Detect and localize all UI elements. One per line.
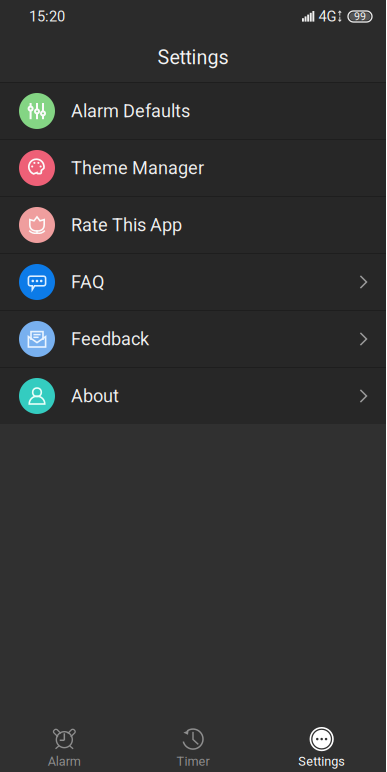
button[interactable]: Theme Manager <box>0 140 386 196</box>
staticText: 15:20 <box>29 8 65 25</box>
staticText: FAQ <box>71 271 104 293</box>
staticText: Rate This App <box>71 214 182 236</box>
button[interactable]: About <box>0 368 386 424</box>
staticText: Settings <box>157 46 228 69</box>
staticText: Feedback <box>71 328 149 350</box>
staticText: Settings <box>298 754 345 769</box>
staticText: 99 <box>354 10 366 23</box>
staticText: Alarm Defaults <box>71 100 190 122</box>
button[interactable]: Feedback <box>0 311 386 367</box>
button[interactable]: Rate This App <box>0 197 386 253</box>
button[interactable]: Timer <box>129 726 257 769</box>
button[interactable]: FAQ <box>0 254 386 310</box>
staticText: 4G <box>318 8 336 25</box>
staticText: Timer <box>176 754 209 769</box>
button[interactable]: Alarm Defaults <box>0 83 386 139</box>
staticText: Theme Manager <box>71 157 204 179</box>
button[interactable]: Alarm <box>0 726 129 769</box>
staticText: About <box>71 385 119 407</box>
staticText: Alarm <box>48 754 81 769</box>
button[interactable]: Settings <box>257 726 386 769</box>
